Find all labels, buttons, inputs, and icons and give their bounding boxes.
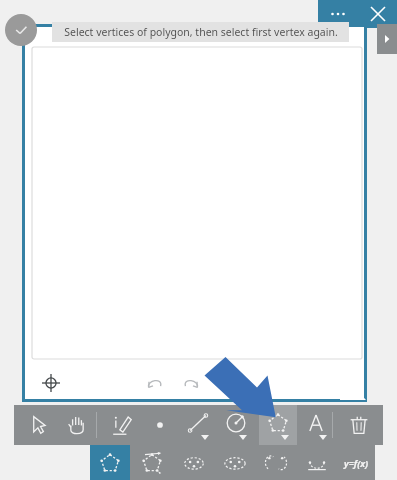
button[interactable]: Confirm — [5, 14, 37, 46]
button[interactable]: Redo — [176, 368, 206, 398]
staticText: y=f(x) — [344, 457, 369, 469]
button[interactable]: Function — [338, 445, 378, 480]
button[interactable]: Center view — [36, 368, 66, 398]
button[interactable]: Pen tool — [103, 405, 141, 445]
button[interactable]: More options — [318, 0, 358, 28]
button[interactable]: Polygon tool — [259, 405, 297, 445]
button[interactable]: Circle tool — [217, 405, 255, 445]
button[interactable]: Regular polygon — [132, 445, 172, 480]
button[interactable]: Semicircle — [297, 445, 337, 480]
button[interactable]: Pan tool — [58, 405, 96, 445]
button[interactable]: Vector polygon — [215, 445, 255, 480]
button[interactable]: Move tool — [20, 405, 58, 445]
staticText: Select vertices of polygon, then select … — [64, 25, 338, 39]
button[interactable]: Expand panel — [377, 24, 397, 54]
button[interactable]: Line tool — [179, 405, 217, 445]
button[interactable]: Polygon — [90, 445, 130, 480]
button[interactable]: Point tool — [141, 405, 179, 445]
button[interactable]: Rigid polygon — [174, 445, 214, 480]
button[interactable]: Undo — [140, 368, 170, 398]
button[interactable]: Delete — [340, 405, 378, 445]
button[interactable]: Arcs — [256, 445, 296, 480]
button[interactable]: Text tool — [297, 405, 335, 445]
button[interactable]: Close — [358, 0, 397, 28]
